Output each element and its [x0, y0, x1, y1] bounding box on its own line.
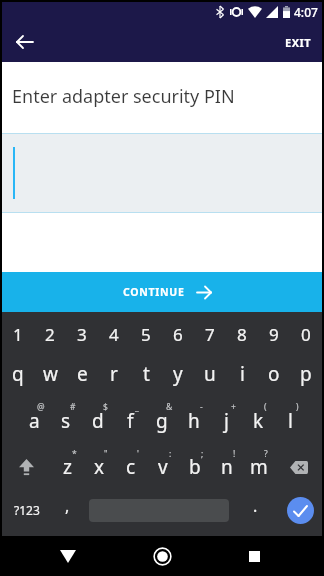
staticText: i — [240, 361, 245, 387]
button[interactable]: 0 — [290, 312, 322, 356]
staticText: w — [43, 361, 58, 387]
button[interactable]: y — [162, 356, 194, 392]
staticText: ? — [264, 448, 268, 460]
staticText: $ — [103, 401, 108, 413]
button[interactable] — [14, 31, 36, 53]
staticText: y — [173, 361, 183, 387]
button[interactable]: 9 — [258, 312, 290, 356]
staticText: v — [158, 454, 168, 480]
staticText: ) — [296, 401, 299, 413]
button[interactable] — [275, 450, 322, 484]
button[interactable]: t — [130, 356, 162, 392]
button[interactable]: n — [211, 450, 243, 484]
button[interactable]: h — [178, 392, 210, 450]
staticText: 3 — [77, 323, 87, 346]
staticText: & — [166, 401, 173, 413]
button[interactable]: g — [146, 392, 178, 450]
button[interactable]: p — [290, 356, 322, 392]
staticText: 0 — [301, 323, 311, 346]
staticText: b — [189, 454, 201, 480]
button[interactable] — [140, 536, 184, 576]
button[interactable]: EXIT — [283, 33, 314, 52]
button[interactable]: 7 — [194, 312, 226, 356]
staticText: _ — [135, 401, 139, 413]
staticText: c — [126, 454, 136, 480]
button[interactable]: . — [231, 484, 279, 536]
button[interactable]: CONTINUE — [2, 272, 322, 312]
staticText: " — [104, 448, 108, 460]
staticText: : — [169, 448, 172, 460]
staticText: t — [143, 361, 150, 387]
staticText: ; — [201, 448, 204, 460]
button[interactable]: i — [226, 356, 258, 392]
button[interactable]: k — [242, 392, 274, 450]
staticText: a — [29, 408, 40, 434]
staticText: q — [12, 361, 24, 387]
button[interactable]: ?123 — [2, 484, 51, 536]
button[interactable]: 6 — [162, 312, 194, 356]
staticText: CONTINUE — [123, 285, 185, 299]
button[interactable]: a — [18, 392, 50, 450]
staticText: ( — [264, 401, 267, 413]
button[interactable]: , — [51, 484, 83, 536]
staticText: @ — [37, 401, 45, 413]
button[interactable]: v — [147, 450, 179, 484]
staticText: 9 — [269, 323, 279, 346]
staticText: 6 — [173, 323, 183, 346]
button[interactable]: 5 — [130, 312, 162, 356]
staticText: 4:07 — [294, 4, 318, 20]
button[interactable] — [46, 536, 90, 576]
staticText: # — [70, 401, 76, 413]
staticText: k — [253, 408, 264, 434]
staticText: 1 — [13, 323, 23, 346]
button[interactable]: j — [210, 392, 242, 450]
staticText: m — [250, 454, 268, 480]
button[interactable]: 8 — [226, 312, 258, 356]
button[interactable]: z — [51, 450, 83, 484]
button[interactable]: 2 — [34, 312, 66, 356]
staticText: EXIT — [285, 35, 312, 50]
button[interactable]: s — [50, 392, 82, 450]
button[interactable]: 3 — [66, 312, 98, 356]
staticText: 2 — [45, 323, 55, 346]
button[interactable]: m — [243, 450, 275, 484]
staticText: d — [92, 408, 104, 434]
button[interactable]: 4 — [98, 312, 130, 356]
staticText: 7 — [205, 323, 215, 346]
button[interactable]: b — [179, 450, 211, 484]
staticText: n — [221, 454, 233, 480]
button[interactable]: o — [258, 356, 290, 392]
button[interactable]: q — [2, 356, 34, 392]
staticText: ?123 — [14, 502, 40, 518]
button[interactable]: f — [114, 392, 146, 450]
staticText: 8 — [237, 323, 247, 346]
staticText: 4 — [109, 323, 119, 346]
staticText: ! — [233, 448, 236, 460]
button[interactable]: u — [194, 356, 226, 392]
staticText: - — [200, 401, 203, 413]
button[interactable]: 1 — [2, 312, 34, 356]
staticText: . — [253, 495, 258, 517]
button[interactable]: d — [82, 392, 114, 450]
button[interactable]: c — [115, 450, 147, 484]
button[interactable]: l — [274, 392, 306, 450]
staticText: u — [204, 361, 216, 387]
staticText: l — [288, 408, 293, 434]
button[interactable] — [287, 497, 314, 524]
staticText: r — [110, 361, 118, 387]
button[interactable] — [2, 450, 51, 484]
staticText: + — [231, 401, 236, 413]
button[interactable]: x — [83, 450, 115, 484]
staticText: o — [268, 361, 280, 387]
button[interactable]: w — [34, 356, 66, 392]
staticText: z — [63, 454, 72, 480]
staticText: Enter adapter security PIN — [12, 84, 235, 109]
staticText: * — [72, 448, 77, 460]
staticText: p — [300, 361, 312, 387]
staticText: f — [127, 408, 134, 434]
button[interactable] — [232, 536, 276, 576]
button[interactable]: r — [98, 356, 130, 392]
button[interactable]: e — [66, 356, 98, 392]
staticText: ' — [137, 448, 139, 460]
